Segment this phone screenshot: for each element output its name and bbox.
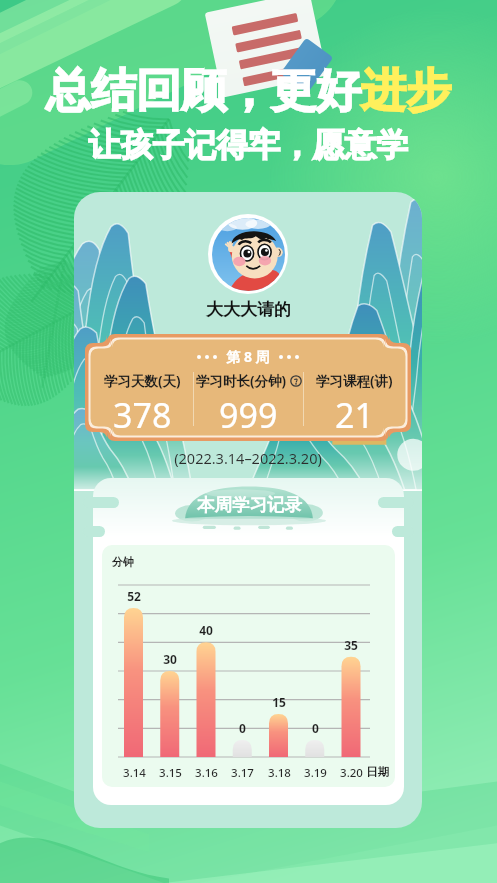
staticText: 0 <box>312 720 319 736</box>
staticText: 378 <box>113 392 172 435</box>
button[interactable]: User avatar <box>208 214 288 294</box>
staticText: 40 <box>199 622 213 638</box>
staticText: 21 <box>335 392 374 435</box>
staticText: 学习天数(天) <box>104 372 181 390</box>
staticText: 15 <box>272 694 286 710</box>
staticText: 3.14 <box>123 765 146 781</box>
staticText: 本周学习记录 <box>197 494 302 516</box>
staticText: 学习课程(讲) <box>316 372 393 390</box>
staticText: 进步 <box>361 63 451 120</box>
staticText: 学习时长(分钟) <box>196 372 287 390</box>
staticText: 大大大请的 <box>206 299 291 320</box>
staticText: 第 8 周 <box>219 347 277 366</box>
staticText: 3.18 <box>268 765 291 781</box>
staticText: (2022.3.14–2022.3.20) <box>74 448 422 468</box>
staticText: 分钟 <box>112 555 134 569</box>
staticText: 让孩子记得牢，愿意学 <box>0 125 497 165</box>
button[interactable]: 第 8 周 <box>85 334 411 441</box>
staticText: 3.17 <box>231 765 254 781</box>
staticText: 3.15 <box>159 765 182 781</box>
staticText: 日期 <box>366 765 389 779</box>
button[interactable]: 本周学习记录 <box>172 482 326 528</box>
staticText: 52 <box>127 588 141 604</box>
staticText: 35 <box>344 637 358 653</box>
staticText: 3.19 <box>304 765 327 781</box>
staticText: 3.20 <box>340 765 363 781</box>
staticText: 999 <box>219 392 278 435</box>
staticText: 3.16 <box>195 765 218 781</box>
button[interactable]: User avatar <box>74 192 422 828</box>
staticText: 总结回顾，更好 <box>46 63 361 120</box>
staticText: 0 <box>239 720 246 736</box>
staticText: 30 <box>163 651 177 667</box>
